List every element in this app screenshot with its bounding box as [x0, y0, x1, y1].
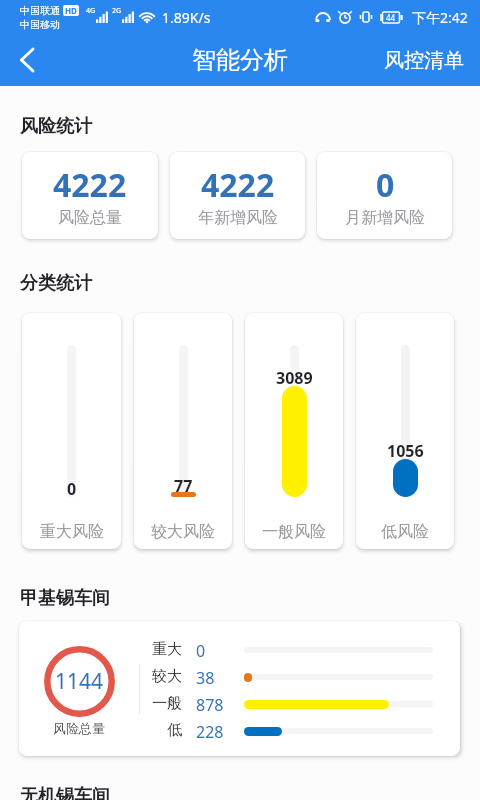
staticText: 0 [376, 163, 395, 207]
staticText: 2G [112, 6, 122, 16]
staticText: 年新增风险 [198, 208, 278, 228]
staticText: HD [65, 5, 77, 16]
staticText: 风险总量 [58, 208, 122, 228]
button[interactable]: 4222 [22, 152, 158, 239]
staticText: 中国联通 [20, 4, 60, 17]
button[interactable]: 0 [317, 152, 452, 239]
staticText: 分类统计 [20, 272, 92, 295]
staticText: 无机锡车间 [20, 785, 110, 800]
staticText: 风险统计 [20, 115, 92, 138]
staticText: 较大风险 [151, 522, 215, 542]
staticText: 3089 [276, 367, 313, 389]
button[interactable]: 风控清单 [366, 34, 480, 86]
staticText: 低 [150, 721, 182, 740]
staticText: 0 [67, 478, 77, 500]
staticText: 风控清单 [384, 48, 464, 72]
button[interactable]: 4222 [170, 152, 305, 239]
staticText: 甲基锡车间 [20, 587, 110, 610]
staticText: 4222 [53, 163, 127, 207]
staticText: 1144 [55, 667, 104, 696]
staticText: 1.89K/s [162, 8, 211, 27]
staticText: 中国移动 [20, 18, 60, 31]
staticText: 4222 [201, 163, 275, 207]
button[interactable]: Back [0, 34, 52, 86]
staticText: 44 [386, 12, 396, 23]
staticText: 较大 [150, 667, 182, 686]
staticText: 智能分析 [192, 45, 288, 75]
staticText: 月新增风险 [345, 208, 425, 228]
staticText: 0 [196, 640, 206, 659]
staticText: 1056 [387, 440, 424, 462]
staticText: 下午2:42 [412, 8, 468, 27]
staticText: 38 [196, 667, 215, 686]
button[interactable]: 1144 [19, 621, 460, 756]
staticText: 228 [196, 721, 224, 740]
staticText: 4G [86, 6, 96, 16]
staticText: 77 [174, 475, 193, 497]
staticText: 风险总量 [53, 720, 105, 736]
staticText: 一般 [150, 694, 182, 713]
button[interactable]: 1056 [356, 313, 454, 549]
staticText: 重大 [150, 640, 182, 659]
staticText: 一般风险 [262, 522, 326, 542]
staticText: 重大风险 [40, 522, 104, 542]
button[interactable]: 0 [22, 313, 121, 549]
button[interactable]: 3089 [245, 313, 343, 549]
button[interactable]: 77 [134, 313, 232, 549]
staticText: 878 [196, 694, 224, 713]
staticText: 低风险 [381, 522, 429, 542]
